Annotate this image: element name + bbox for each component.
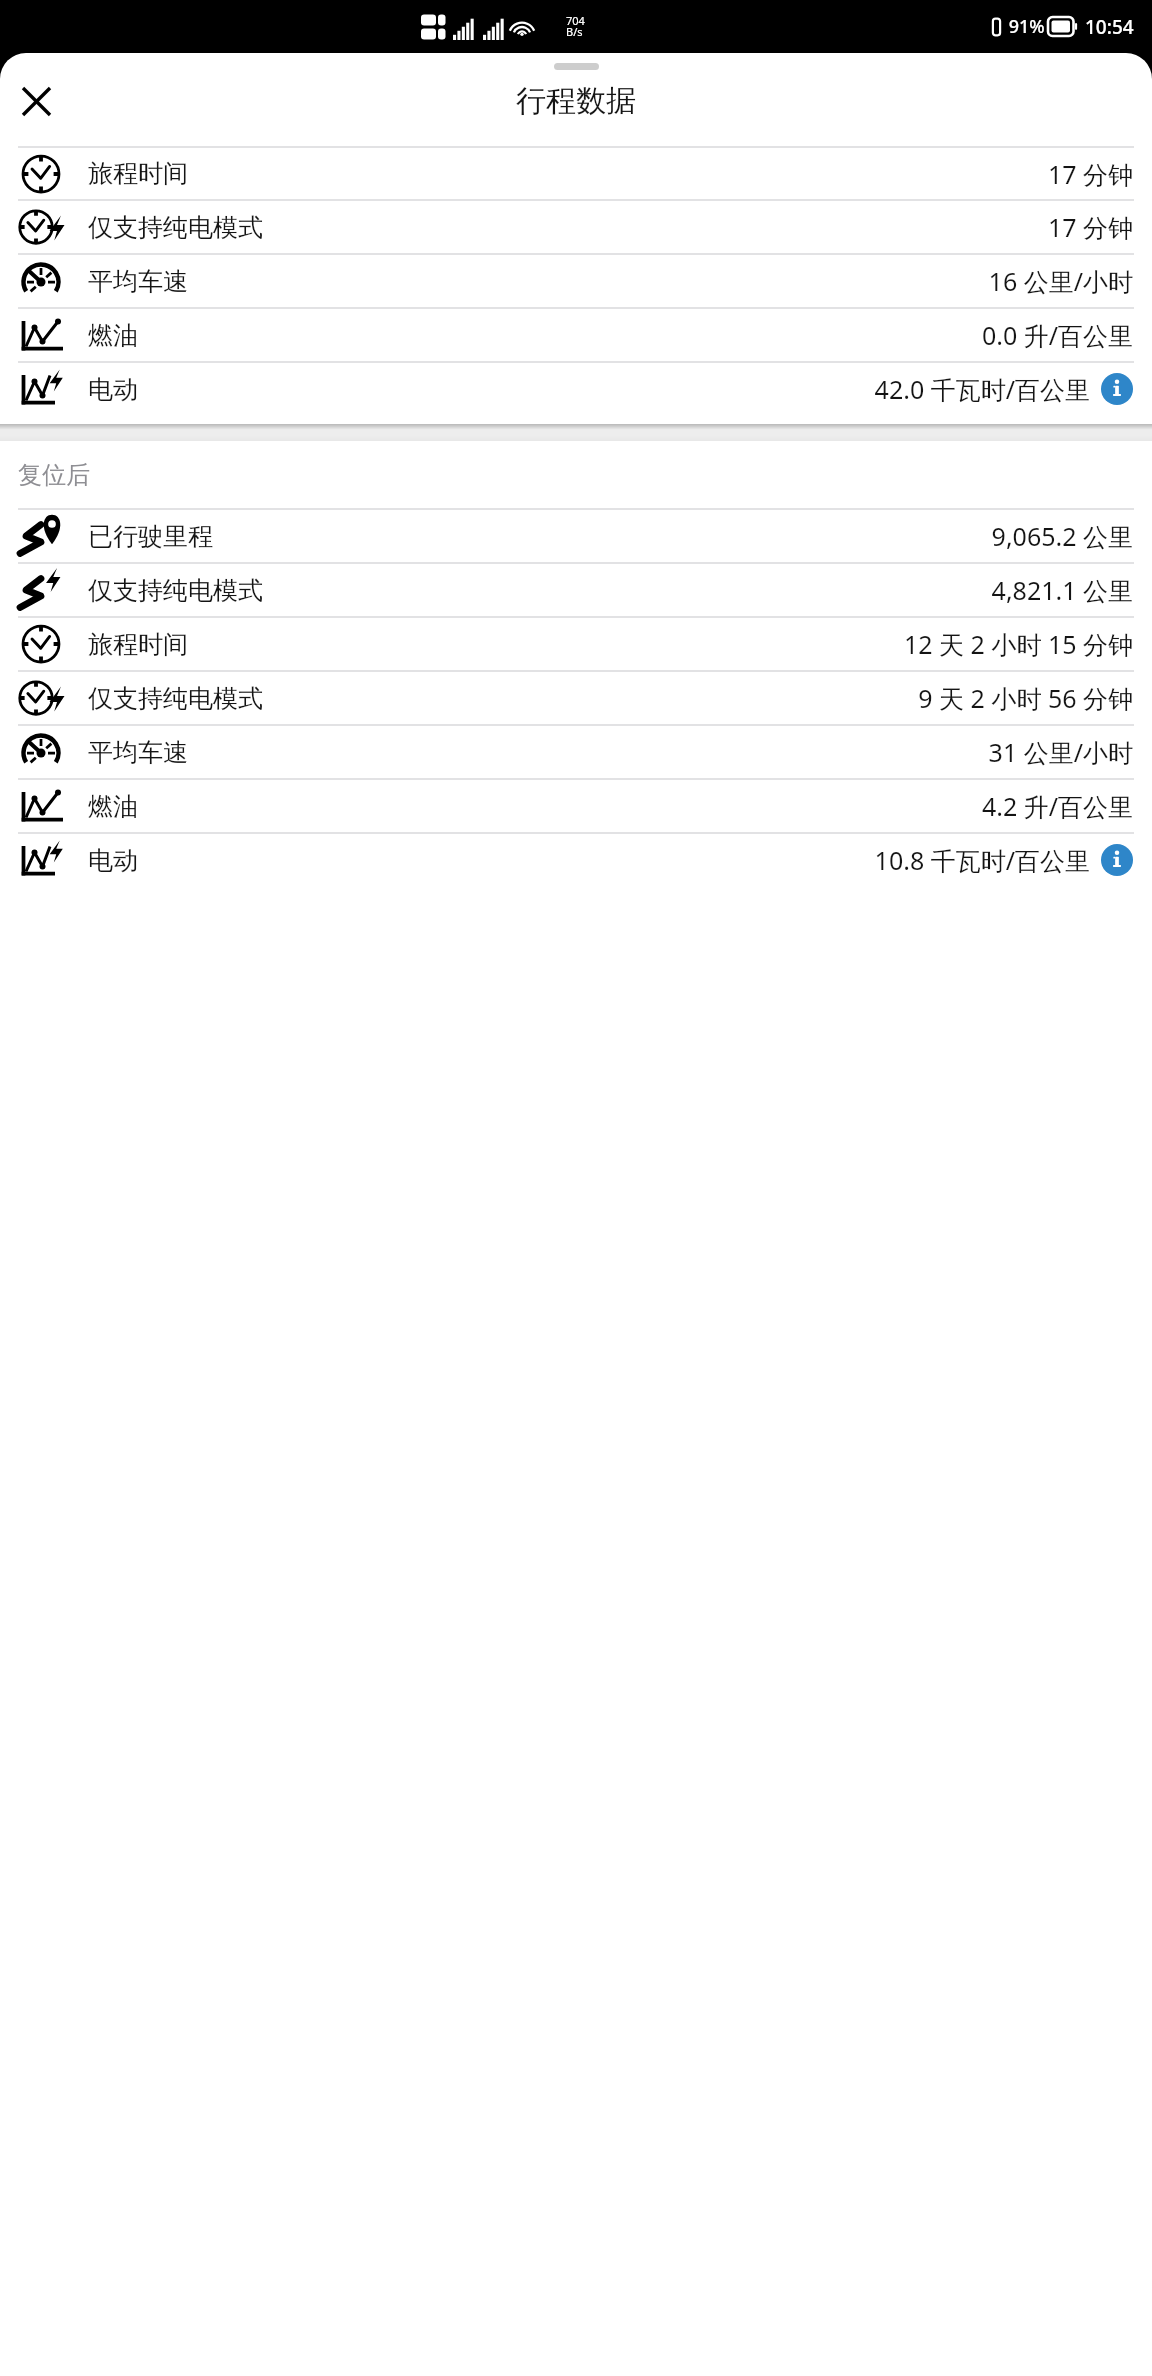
button[interactable]: 仅支持纯电模式 bbox=[0, 564, 1152, 616]
button[interactable]: 旅程时间 bbox=[0, 148, 1152, 199]
staticText: 12 天 2 小时 15 分钟 bbox=[903, 627, 1133, 661]
button[interactable]: 平均车速 bbox=[0, 726, 1152, 778]
staticText: 燃油 bbox=[88, 791, 138, 822]
staticText: 4.2 升/百公里 bbox=[981, 789, 1133, 823]
button[interactable]: 电动 bbox=[0, 834, 1152, 886]
staticText: 电动 bbox=[88, 374, 138, 405]
button[interactable]: 信息 bbox=[1101, 373, 1133, 405]
staticText: 燃油 bbox=[88, 320, 138, 351]
staticText: 已行驶里程 bbox=[88, 521, 213, 552]
staticText: 仅支持纯电模式 bbox=[88, 683, 263, 714]
staticText: 4,821.1 公里 bbox=[991, 573, 1133, 607]
button[interactable]: 燃油 bbox=[0, 780, 1152, 832]
staticText: 平均车速 bbox=[88, 737, 188, 768]
staticText: 行程数据 bbox=[516, 82, 636, 120]
staticText: 16 公里/小时 bbox=[988, 264, 1133, 298]
staticText: 旅程时间 bbox=[88, 158, 188, 189]
staticText: 9,065.2 公里 bbox=[991, 519, 1133, 553]
staticText: 平均车速 bbox=[88, 266, 188, 297]
staticText: 0.0 升/百公里 bbox=[981, 318, 1133, 352]
button[interactable]: 信息 bbox=[1101, 844, 1133, 876]
staticText: 仅支持纯电模式 bbox=[88, 212, 263, 243]
staticText: 电动 bbox=[88, 845, 138, 876]
staticText: 704 B/s bbox=[566, 13, 585, 40]
staticText: 复位后 bbox=[18, 460, 90, 490]
staticText: 旅程时间 bbox=[88, 629, 188, 660]
button[interactable]: 旅程时间 bbox=[0, 618, 1152, 670]
staticText: 仅支持纯电模式 bbox=[88, 575, 263, 606]
staticText: 42.0 千瓦时/百公里 bbox=[874, 372, 1090, 406]
button[interactable]: 电动 bbox=[0, 363, 1152, 415]
button[interactable]: 已行驶里程 bbox=[0, 510, 1152, 562]
staticText: 10.8 千瓦时/百公里 bbox=[874, 843, 1090, 877]
staticText: 9 天 2 小时 56 分钟 bbox=[918, 681, 1133, 715]
button[interactable]: 关闭 bbox=[10, 75, 62, 127]
staticText: 31 公里/小时 bbox=[988, 735, 1133, 769]
staticText: 17 分钟 bbox=[1047, 157, 1133, 191]
staticText: 91% bbox=[1004, 14, 1045, 39]
button[interactable]: 仅支持纯电模式 bbox=[0, 201, 1152, 253]
button[interactable]: 燃油 bbox=[0, 309, 1152, 361]
button[interactable]: 仅支持纯电模式 bbox=[0, 672, 1152, 724]
staticText: 10:54 bbox=[1085, 14, 1134, 40]
button[interactable]: 平均车速 bbox=[0, 255, 1152, 307]
staticText: 17 分钟 bbox=[1047, 210, 1133, 244]
